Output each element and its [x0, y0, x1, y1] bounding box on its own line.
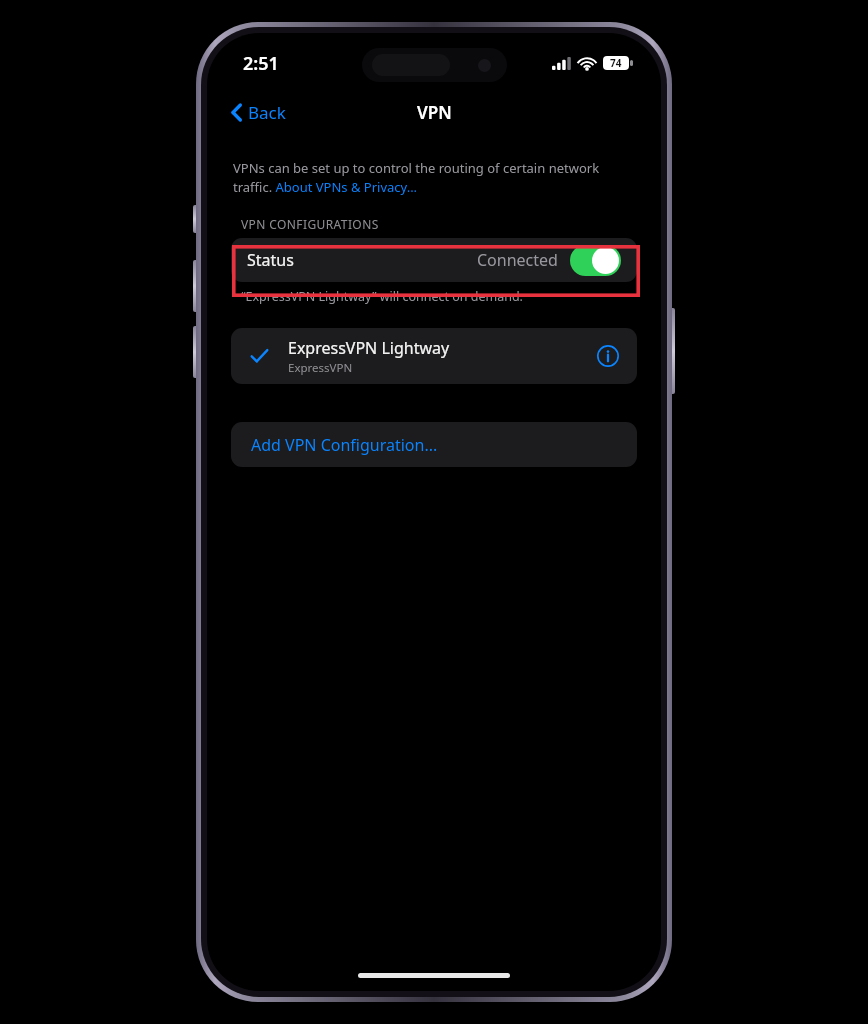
button[interactable]: VPN status toggle, on — [570, 245, 621, 276]
button[interactable]: Back — [225, 97, 292, 128]
staticText: ExpressVPN — [288, 360, 353, 376]
button[interactable]: Add VPN Configuration... — [231, 422, 637, 467]
staticText: 74 — [610, 56, 622, 70]
staticText: Status — [247, 249, 294, 271]
button[interactable]: ExpressVPN Lightway — [231, 328, 637, 384]
staticText: VPN CONFIGURATIONS — [241, 216, 379, 232]
staticText: “ExpressVPN Lightway” will connect on de… — [241, 288, 523, 305]
staticText: VPNs can be set up to control the routin… — [233, 159, 637, 196]
staticText: Add VPN Configuration... — [251, 434, 438, 456]
staticText: Connected — [477, 249, 558, 271]
staticText: ExpressVPN Lightway — [288, 337, 450, 359]
staticText: VPN — [417, 101, 452, 124]
staticText: Back — [248, 101, 286, 124]
staticText: 2:51 — [243, 51, 279, 76]
button[interactable]: More info about ExpressVPN Lightway — [591, 339, 625, 373]
button[interactable]: Status — [231, 238, 637, 282]
